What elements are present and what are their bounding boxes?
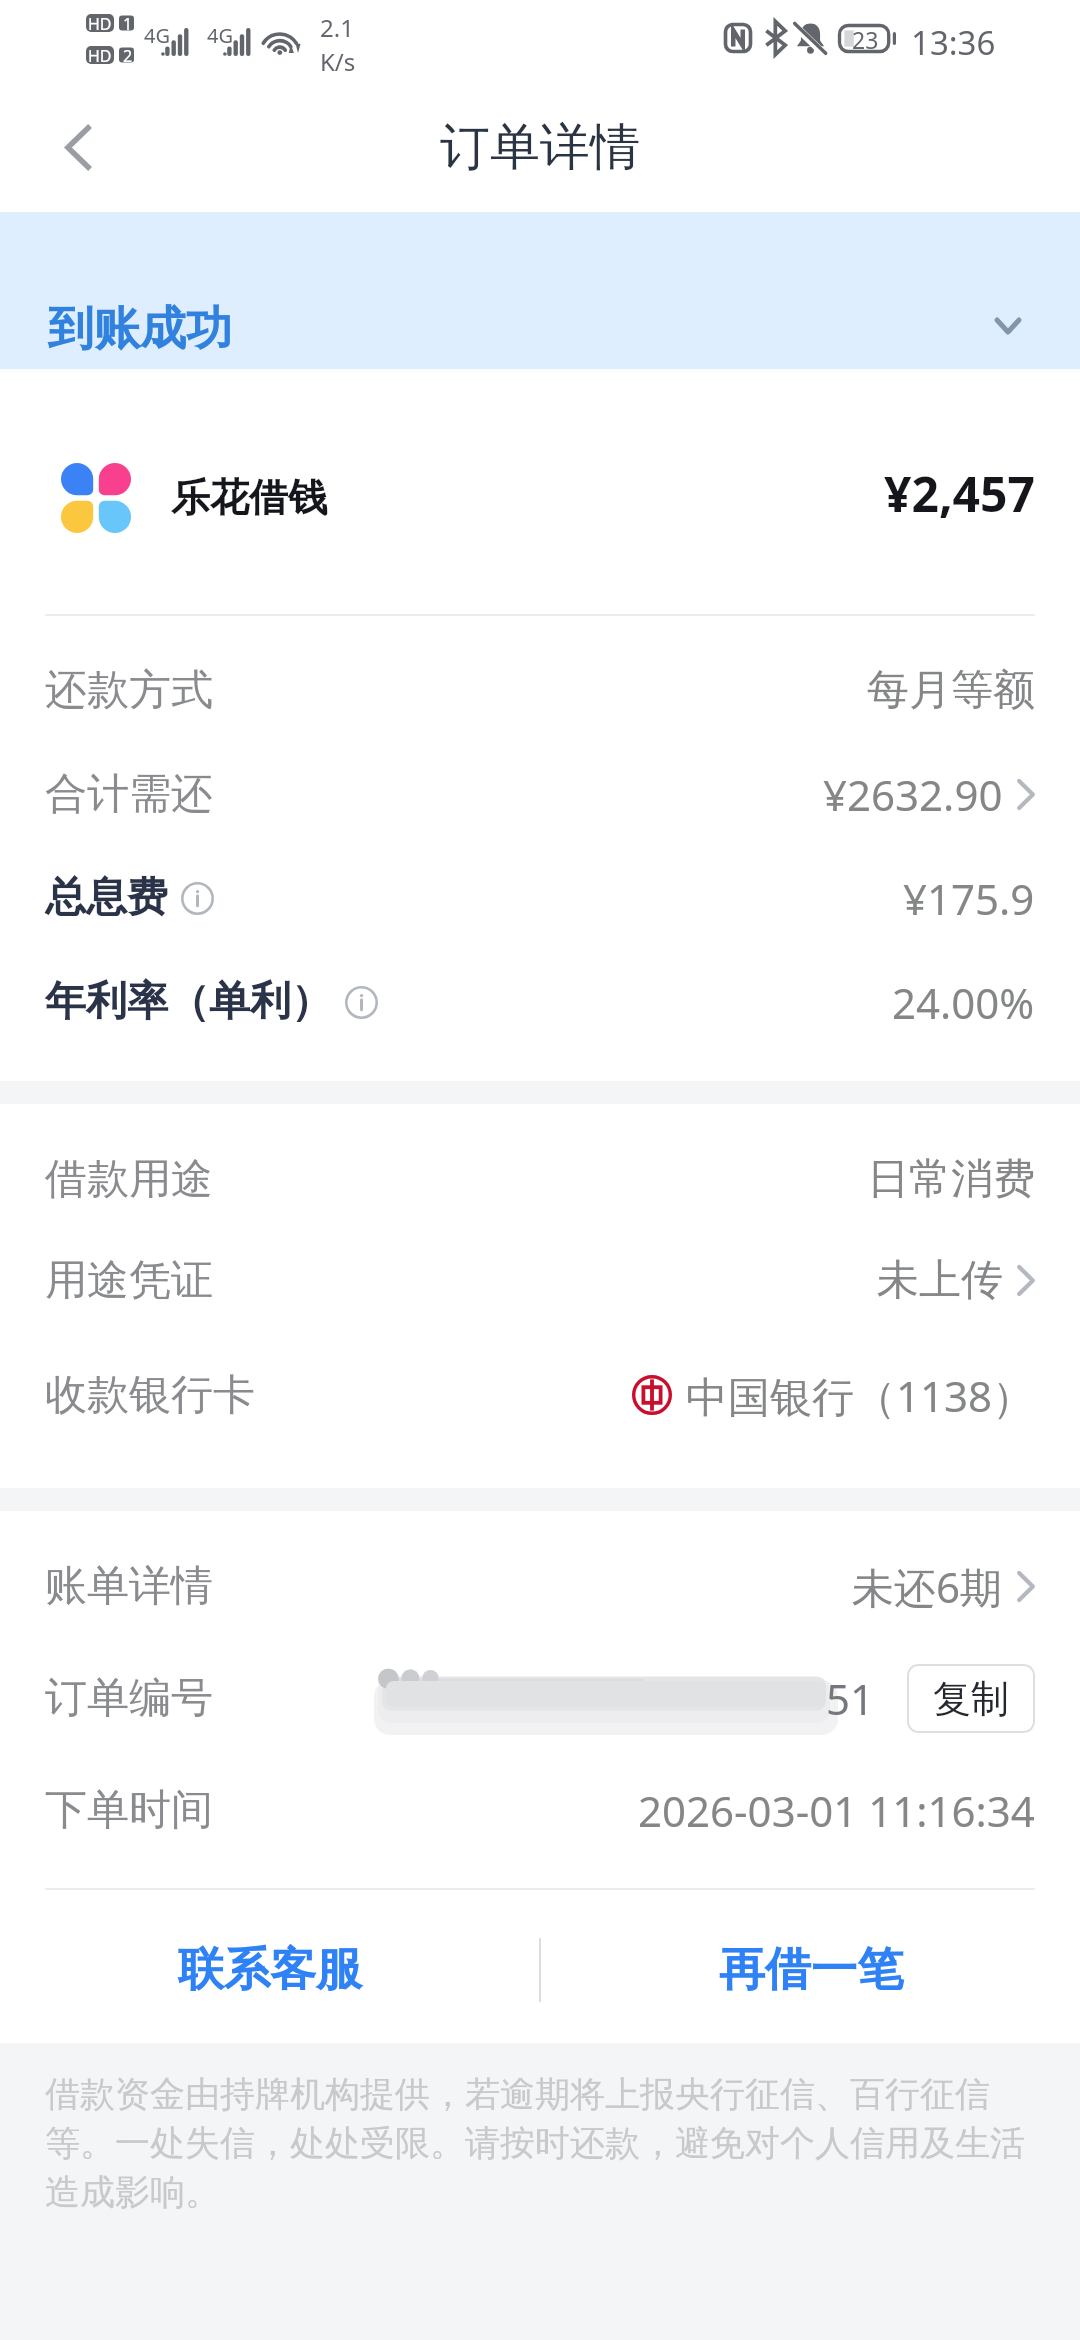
staticText: 4G [207,22,233,49]
button[interactable]: 联系客服 [0,1893,539,2046]
staticText: 合计需还 [45,768,213,821]
staticText: 下单时间 [45,1784,213,1837]
button[interactable]: 总息费 [0,846,1080,950]
staticText: 年利率（单利） [45,976,332,1028]
button[interactable]: 收款银行卡 [0,1331,1080,1449]
staticText: 订单详情 [440,116,640,179]
staticText: 2 [123,45,133,67]
staticText: 账单详情 [45,1560,213,1613]
staticText: 每月等额 [867,664,1035,717]
staticText: 再借一笔 [719,1941,903,1999]
staticText: HD [88,13,112,35]
staticText: 借款用途 [45,1153,213,1206]
staticText: 还款方式 [45,664,213,717]
staticText: K/s [320,45,356,78]
staticText: HD [88,45,112,67]
staticText: ¥175.9 [903,870,1035,927]
staticText: 复制 [933,1675,1009,1723]
button[interactable]: 账单详情 [0,1530,1080,1642]
button[interactable]: 年利率（单利） [0,950,1080,1054]
staticText: 中国银行（1138） [686,1367,1035,1424]
staticText: 借款资金由持牌机构提供，若逾期将上报央行征信、百行征信等。一处失信，处处受限。请… [45,2072,1042,2214]
staticText: 23 [852,24,879,53]
button[interactable]: 借款用途 [0,1129,1080,1230]
staticText: 4G [144,22,170,49]
staticText: 用途凭证 [45,1254,213,1307]
button[interactable]: 下单时间 [0,1754,1080,1866]
staticText: 13:36 [911,20,996,65]
staticText: 日常消费 [867,1153,1035,1206]
staticText: 51 [826,1670,875,1727]
button[interactable]: 还款方式 [0,638,1080,742]
staticText: 联系客服 [178,1941,362,1999]
button[interactable]: 到账成功 展开 [0,212,1080,369]
staticText: 总息费 [45,872,168,924]
button[interactable]: Back [33,102,123,192]
staticText: ¥2,457 [884,461,1035,526]
button[interactable]: 复制 [907,1664,1035,1733]
staticText: 到账成功 [48,300,232,358]
staticText: 订单编号 [45,1672,213,1725]
staticText: 乐花借钱 [171,473,327,522]
staticText: ¥2632.90 [823,766,1003,823]
staticText: 1 [123,13,133,35]
staticText: 24.00% [892,974,1035,1031]
button[interactable]: 用途凭证 [0,1230,1080,1331]
staticText: 收款银行卡 [45,1369,255,1422]
staticText: 2026-03-01 11:16:34 [638,1782,1035,1839]
staticText: 2.1 [320,11,354,44]
staticText: 未上传 [877,1254,1003,1307]
button[interactable]: 合计需还 [0,742,1080,846]
staticText: 未还6期 [852,1558,1003,1615]
button[interactable]: 再借一笔 [541,1893,1080,2046]
